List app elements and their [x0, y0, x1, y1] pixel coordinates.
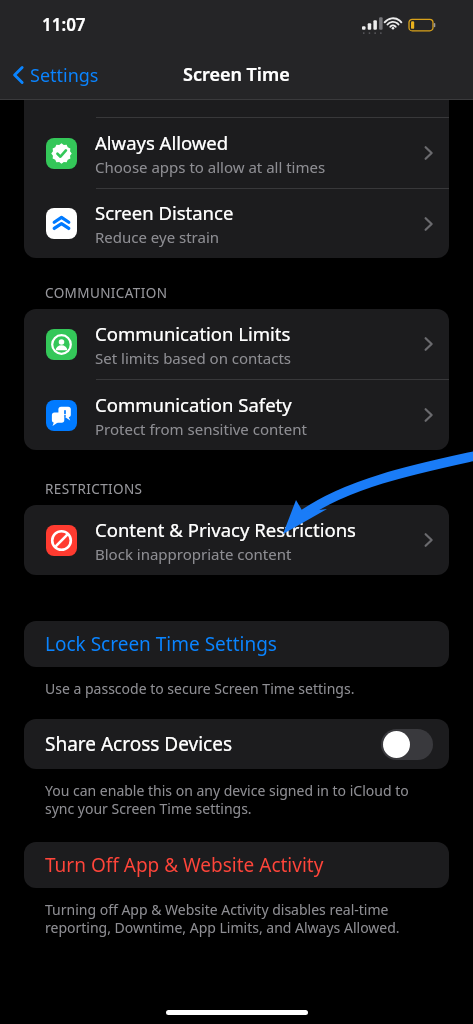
staticText: Use a passcode to secure Screen Time set…	[45, 679, 355, 698]
button[interactable]: Screen Distance	[24, 189, 449, 258]
button[interactable]: Communication Limits	[24, 309, 449, 379]
button[interactable]: Content & Privacy Restrictions	[24, 505, 449, 575]
staticText: Settings	[30, 63, 99, 88]
staticText: 11:07	[42, 13, 86, 36]
button[interactable]: Share Across Devices	[24, 719, 449, 769]
button[interactable]: Always Allowed	[24, 118, 449, 188]
staticText: Communication Safety	[95, 392, 292, 417]
staticText: RESTRICTIONS	[45, 480, 143, 498]
staticText: Content & Privacy Restrictions	[95, 517, 356, 542]
staticText: Reduce eye strain	[95, 227, 220, 247]
staticText: Communication Limits	[95, 321, 291, 346]
staticText: Turn Off App & Website Activity	[45, 852, 324, 878]
staticText: Block inappropriate content	[95, 544, 292, 564]
button[interactable]: Communication Safety	[24, 380, 449, 450]
button[interactable]: Turn Off App & Website Activity	[24, 842, 449, 888]
button[interactable]: Lock Screen Time Settings	[24, 621, 449, 667]
staticText: Lock Screen Time Settings	[45, 631, 277, 657]
staticText: Screen Time	[183, 62, 290, 87]
staticText: Protect from sensitive content	[95, 419, 307, 439]
staticText: COMMUNICATION	[45, 284, 168, 302]
button[interactable]: Settings	[0, 55, 109, 95]
staticText: You can enable this on any device signed…	[45, 781, 433, 818]
staticText: Always Allowed	[95, 130, 229, 155]
staticText: Share Across Devices	[45, 731, 381, 757]
staticText: Set limits based on contacts	[95, 348, 291, 368]
staticText: Choose apps to allow at all times	[95, 157, 326, 177]
staticText: Turning off App & Website Activity disab…	[45, 900, 433, 937]
staticText: Screen Distance	[95, 200, 234, 225]
